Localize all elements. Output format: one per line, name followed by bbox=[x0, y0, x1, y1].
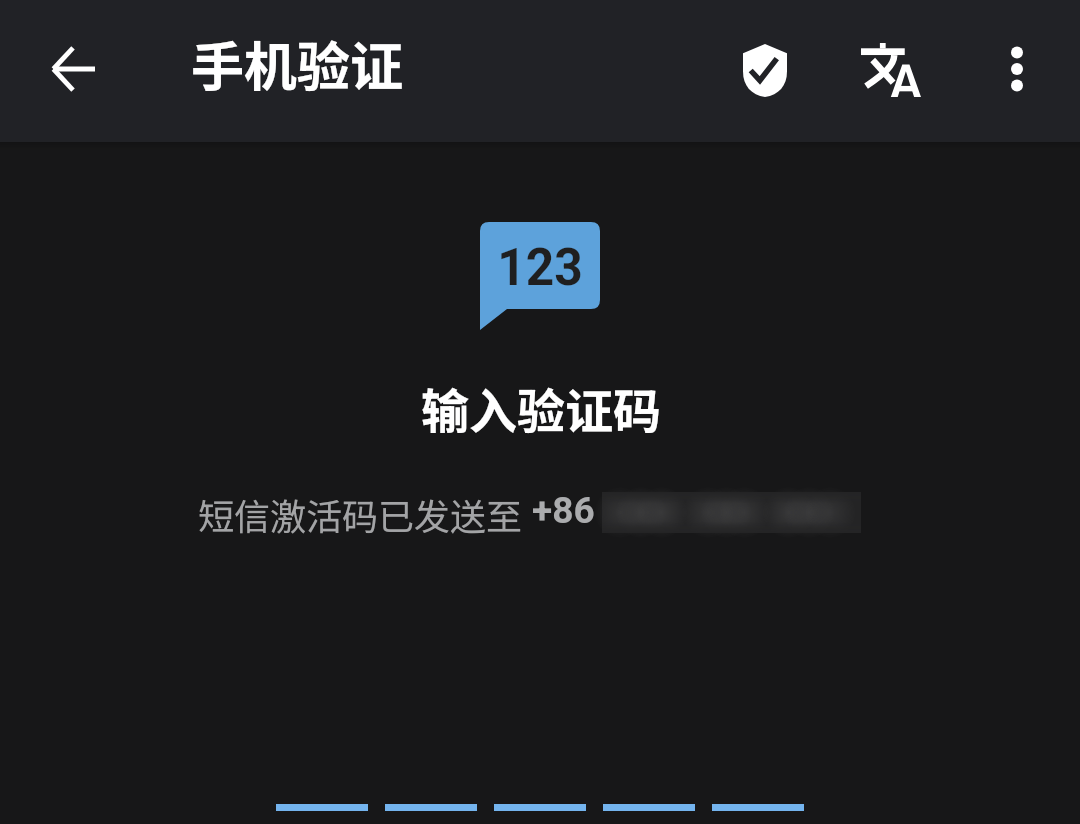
staticText: +86 bbox=[532, 489, 595, 532]
staticText: 123 bbox=[483, 237, 597, 298]
staticText: 手机验证 bbox=[191, 25, 403, 102]
staticText: 输入验证码 bbox=[1, 373, 1080, 443]
staticText: 短信激活码已发送至 bbox=[198, 488, 523, 540]
button[interactable]: More options bbox=[971, 23, 1063, 115]
button[interactable]: Security bbox=[719, 24, 811, 116]
button[interactable]: Translate bbox=[845, 24, 937, 116]
button[interactable]: Back bbox=[27, 23, 119, 115]
